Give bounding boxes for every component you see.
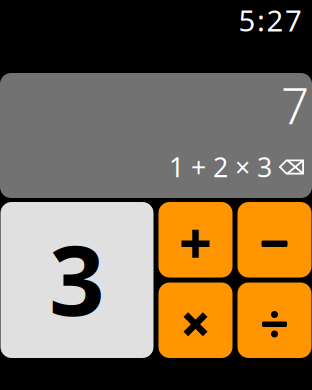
staticText: 7 bbox=[281, 72, 309, 138]
button[interactable]: Multiply bbox=[158, 282, 232, 358]
staticText: 3 bbox=[49, 213, 105, 343]
staticText: 5:27 bbox=[238, 0, 302, 39]
button[interactable]: Divide bbox=[237, 282, 311, 358]
button[interactable]: 3 bbox=[0, 202, 153, 358]
staticText: 1 + 2 × 3 bbox=[169, 149, 272, 185]
button[interactable]: Delete bbox=[279, 159, 304, 174]
button[interactable]: Add bbox=[158, 202, 232, 277]
button[interactable]: Subtract bbox=[237, 202, 311, 277]
